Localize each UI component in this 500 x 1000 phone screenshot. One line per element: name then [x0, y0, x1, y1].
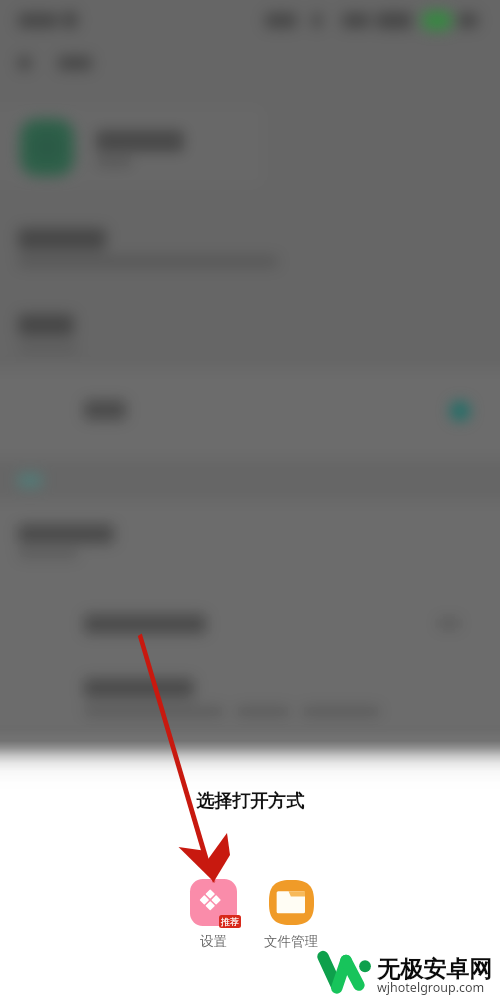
- button[interactable]: File manager: [251, 877, 331, 950]
- staticText: 无极安卓网: [377, 955, 492, 984]
- other: Settings: [190, 879, 237, 926]
- staticText: 选择打开方式: [196, 790, 304, 813]
- other: File manager: [269, 880, 314, 925]
- button[interactable]: Settings: [173, 877, 253, 950]
- staticText: 文件管理: [264, 933, 318, 950]
- staticText: 推荐: [221, 916, 239, 927]
- staticText: wjhotelgroup.com: [377, 979, 485, 996]
- staticText: 设置: [200, 933, 227, 950]
